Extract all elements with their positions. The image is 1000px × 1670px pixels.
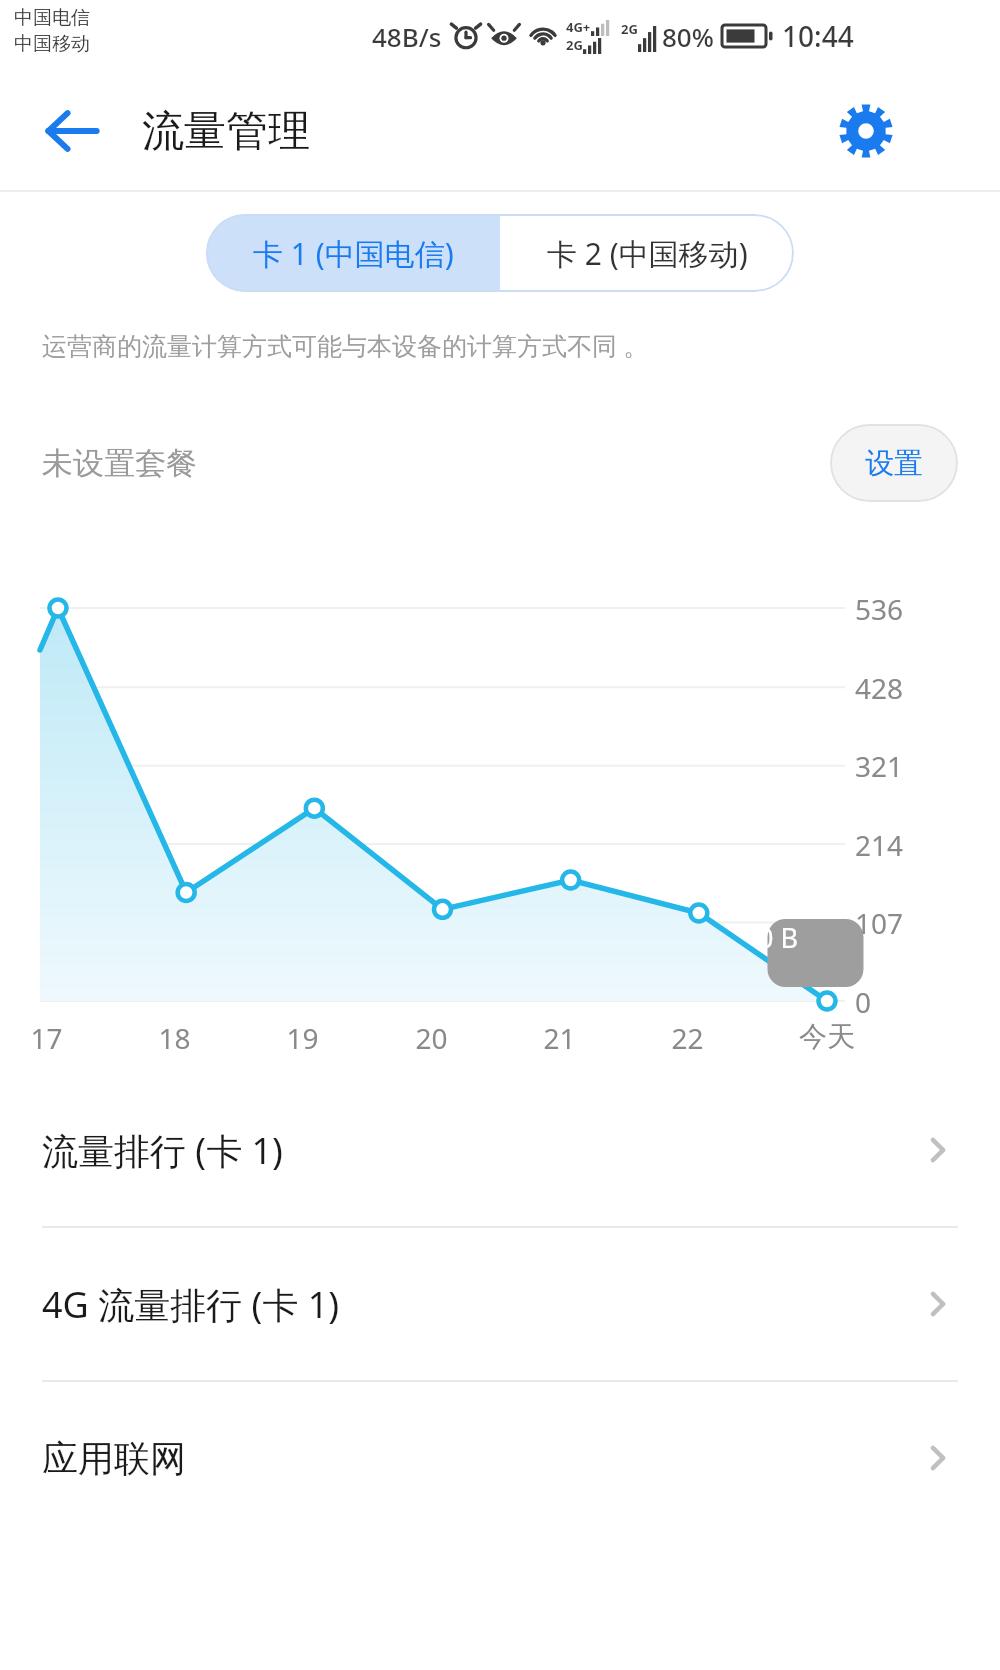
staticText: 321 — [855, 747, 904, 785]
staticText: 107 — [855, 904, 904, 942]
button[interactable]: 4G 流量排行 (卡 1) — [0, 1228, 1000, 1380]
button[interactable]: Back — [28, 87, 116, 175]
button[interactable]: 卡 2 (中国移动) — [500, 214, 794, 292]
staticText: 19 — [286, 1019, 319, 1057]
button[interactable]: 设置 — [830, 424, 958, 502]
staticText: 卡 2 (中国移动) — [547, 233, 748, 274]
staticText: 536 — [855, 590, 904, 628]
staticText: 中国电信 — [14, 6, 90, 30]
button[interactable]: Settings — [822, 87, 910, 175]
staticText: 18 — [158, 1019, 191, 1057]
staticText: 流量管理 — [142, 105, 310, 158]
staticText: 运营商的流量计算方式可能与本设备的计算方式不同 。 — [42, 328, 649, 362]
staticText: 4G 流量排行 (卡 1) — [42, 1280, 340, 1329]
staticText: 17 — [30, 1019, 63, 1057]
staticText: 中国移动 — [14, 32, 90, 56]
staticText: 今天 — [799, 1019, 855, 1054]
staticText: 22 — [671, 1019, 704, 1057]
staticText: 428 — [855, 669, 904, 707]
staticText: 流量排行 (卡 1) — [42, 1126, 283, 1175]
staticText: 2G — [621, 20, 638, 38]
button[interactable]: 卡 1 (中国电信) — [206, 214, 500, 292]
staticText: 21 — [543, 1019, 576, 1057]
staticText: 2G — [566, 36, 583, 54]
staticText: 应用联网 — [42, 1436, 186, 1481]
staticText: 0 B — [758, 919, 799, 956]
staticText: 80% — [662, 19, 714, 54]
staticText: 214 — [855, 826, 904, 864]
staticText: 48B/s — [372, 19, 442, 54]
staticText: 卡 1 (中国电信) — [253, 233, 454, 274]
staticText: 10:44 — [782, 17, 854, 55]
button[interactable]: 应用联网 — [0, 1382, 1000, 1534]
staticText: 4G+ — [566, 18, 591, 36]
button[interactable]: 流量排行 (卡 1) — [0, 1074, 1000, 1226]
staticText: 设置 — [865, 445, 923, 482]
staticText: 20 — [415, 1019, 448, 1057]
staticText: 未设置套餐 — [42, 444, 197, 483]
staticText: 0 — [855, 983, 872, 1021]
